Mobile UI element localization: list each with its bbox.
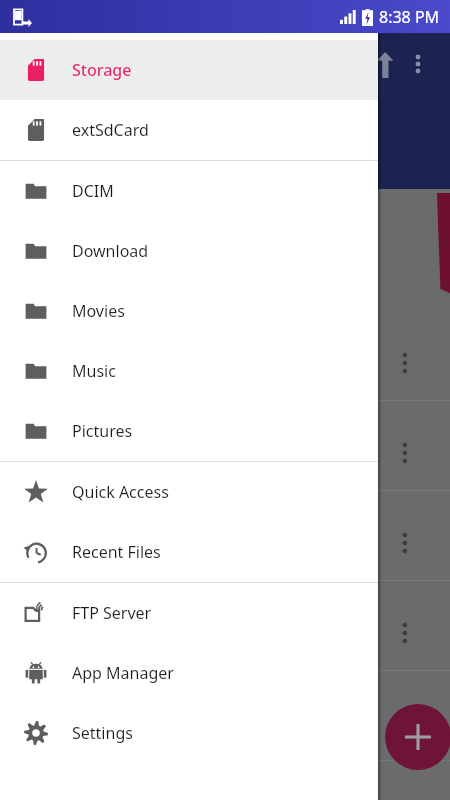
button[interactable]: Add (385, 704, 450, 770)
button[interactable]: DCIM (0, 161, 378, 221)
button[interactable]: Pictures (0, 401, 378, 461)
button[interactable]: Item options (386, 525, 426, 561)
staticText: Music (72, 360, 116, 382)
button[interactable]: extSdCard (0, 100, 378, 160)
staticText: Recent Files (72, 541, 161, 563)
staticText: extSdCard (72, 119, 149, 141)
button[interactable]: FTP Server (0, 583, 378, 643)
staticText: Pictures (72, 420, 133, 442)
button[interactable]: Download (0, 221, 378, 281)
staticText: FTP Server (72, 602, 152, 624)
button[interactable]: Settings (0, 703, 378, 763)
staticText: Download (72, 240, 149, 262)
button[interactable]: App Manager (0, 643, 378, 703)
button[interactable]: Music (0, 341, 378, 401)
staticText: Movies (72, 300, 125, 322)
staticText: 8:38 PM (379, 6, 440, 28)
button[interactable]: More options (396, 42, 440, 86)
staticText: Settings (72, 722, 133, 744)
button[interactable]: Item options (386, 435, 426, 471)
staticText: Quick Access (72, 481, 169, 503)
staticText: DCIM (72, 180, 114, 202)
button[interactable]: Item options (386, 615, 426, 651)
staticText: App Manager (72, 662, 174, 684)
button[interactable]: Movies (0, 281, 378, 341)
staticText: Storage (72, 59, 132, 81)
button[interactable]: Recent Files (0, 522, 378, 582)
button[interactable]: Storage (0, 40, 378, 100)
button[interactable]: Item options (386, 345, 426, 381)
button[interactable]: Quick Access (0, 462, 378, 522)
